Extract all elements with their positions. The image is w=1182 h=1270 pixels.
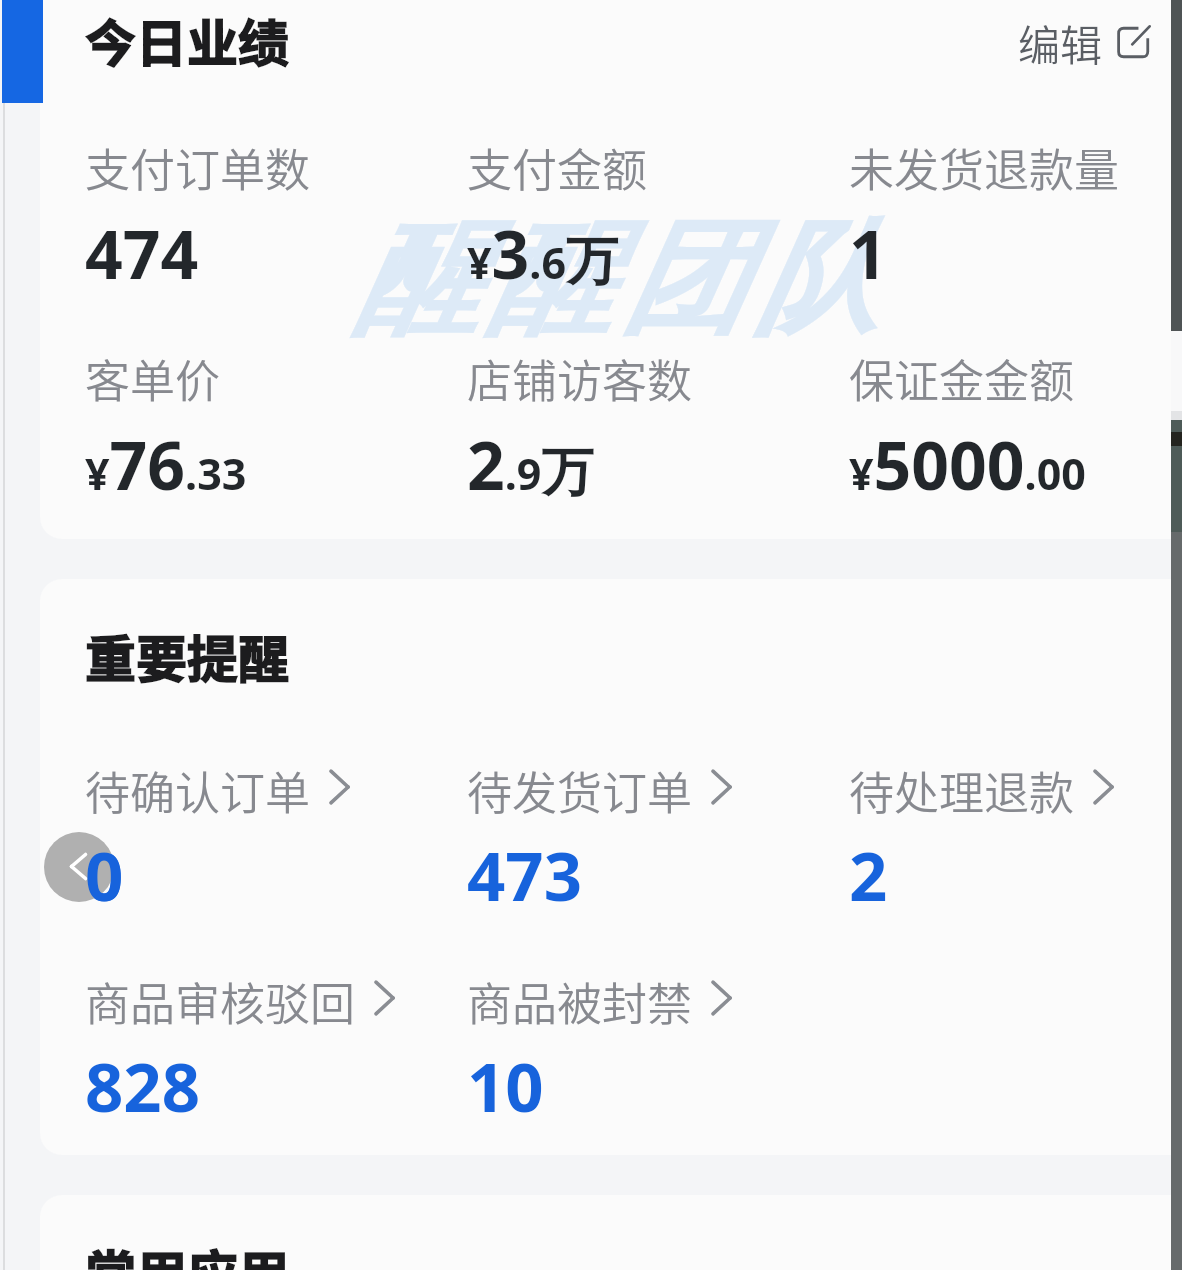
staticText: 店铺访客数 xyxy=(467,346,693,411)
staticText: ¥5000.00 xyxy=(849,419,1086,509)
staticText: 常用应用 xyxy=(85,1234,290,1270)
staticText: 商品被封禁 xyxy=(467,969,693,1034)
staticText: 待处理退款 xyxy=(849,758,1075,823)
staticText: 醒醒团队 xyxy=(350,202,882,358)
button[interactable]: 商品被封禁 xyxy=(467,969,807,1119)
staticText: 473 xyxy=(467,829,582,920)
staticText: ¥76.33 xyxy=(85,419,247,509)
staticText: 支付金额 xyxy=(467,135,648,200)
staticText: 1 xyxy=(849,208,887,298)
staticText: 828 xyxy=(85,1040,200,1131)
staticText: 客单价 xyxy=(85,346,221,411)
staticText: 待发货订单 xyxy=(467,758,693,823)
button[interactable]: 待发货订单 xyxy=(467,758,807,908)
staticText: 今日业绩 xyxy=(85,3,290,77)
staticText: ¥3.6万 xyxy=(467,208,619,298)
staticText: 0 xyxy=(85,829,124,920)
staticText: 重要提醒 xyxy=(85,619,290,693)
staticText: 商品审核驳回 xyxy=(85,969,356,1034)
staticText: 支付订单数 xyxy=(85,135,311,200)
button[interactable]: Back xyxy=(44,832,114,902)
staticText: 待确认订单 xyxy=(85,758,311,823)
staticText: 2.9万 xyxy=(467,419,594,509)
button[interactable]: 待处理退款 xyxy=(849,758,1182,908)
staticText: 10 xyxy=(467,1040,544,1131)
staticText: 保证金金额 xyxy=(849,346,1075,411)
button[interactable]: 待确认订单 xyxy=(85,758,425,908)
button[interactable]: 商品审核驳回 xyxy=(85,969,425,1119)
staticText: 2 xyxy=(849,829,888,920)
staticText: 未发货退款量 xyxy=(849,135,1120,200)
button[interactable]: 编辑 xyxy=(1012,6,1155,79)
staticText: 474 xyxy=(85,208,199,298)
staticText: 编辑 xyxy=(1018,12,1103,73)
staticText: 0 xyxy=(85,829,124,920)
